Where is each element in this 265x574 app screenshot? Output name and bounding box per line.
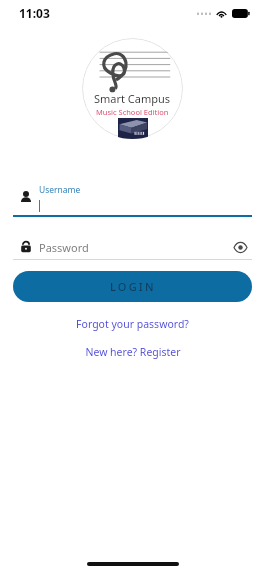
button[interactable]: New here? Register xyxy=(75,342,191,362)
button[interactable]: Forgot your password? xyxy=(66,314,199,334)
staticText: Music School Edition xyxy=(96,107,169,117)
button[interactable]: Show password xyxy=(228,235,252,259)
button[interactable]: LOGIN xyxy=(13,271,252,302)
staticText: Forgot your password? xyxy=(76,317,189,331)
staticText: Password xyxy=(39,240,228,255)
button[interactable]: Username xyxy=(13,181,252,217)
staticText: Smart Campus xyxy=(94,91,171,106)
staticText: 11:03 xyxy=(19,5,50,21)
staticText: LOGIN xyxy=(110,279,156,294)
button[interactable]: Password xyxy=(13,235,252,260)
staticText: New here? Register xyxy=(85,345,181,359)
staticText: Username xyxy=(39,184,81,196)
